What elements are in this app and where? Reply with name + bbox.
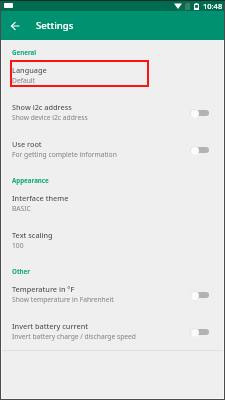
button[interactable]: Temperature in °F	[0, 276, 225, 313]
staticText: 10:48	[203, 1, 223, 11]
staticText: Other	[12, 267, 31, 275]
staticText: Use root	[12, 139, 42, 149]
button[interactable]: Interface theme	[0, 185, 225, 222]
button[interactable]: Text scaling	[0, 222, 225, 259]
staticText: Invert battery current	[12, 321, 89, 331]
button[interactable]: Language	[0, 57, 225, 94]
button[interactable]: Show i2c address	[0, 94, 225, 131]
staticText: Language	[12, 65, 47, 75]
staticText: Temperature in °F	[12, 284, 75, 294]
staticText: Interface theme	[12, 193, 69, 203]
staticText: General	[12, 48, 37, 56]
staticText: 100	[12, 241, 24, 250]
staticText: For getting complete information	[12, 150, 117, 159]
staticText: Show i2c address	[12, 102, 72, 112]
button[interactable]: Back	[5, 16, 24, 35]
staticText: Appearance	[12, 176, 49, 184]
staticText: Show temperature in Fahrenheit	[12, 295, 114, 304]
button[interactable]: Use root	[0, 131, 225, 168]
staticText: Show device i2c address	[12, 113, 88, 122]
staticText: Text scaling	[12, 230, 53, 240]
button[interactable]: Invert battery current	[0, 313, 225, 350]
staticText: Default	[12, 76, 35, 85]
staticText: BASIC	[12, 204, 31, 213]
staticText: Invert battery charge / discharge speed	[12, 332, 136, 341]
staticText: Settings	[36, 19, 74, 32]
